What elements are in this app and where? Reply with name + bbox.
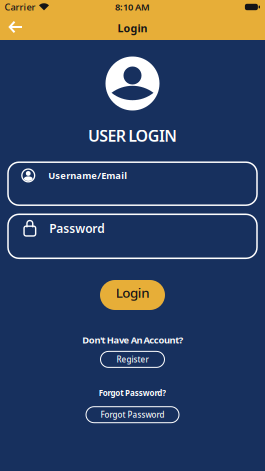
staticText: Register (116, 354, 148, 365)
staticText: 8:10 AM (115, 1, 150, 13)
button[interactable]: Register (100, 351, 164, 367)
button[interactable]: Forgot Password (86, 407, 179, 423)
staticText: USER LOGIN (88, 125, 177, 146)
staticText: Login (117, 21, 147, 35)
button[interactable]: Back (0, 14, 30, 40)
staticText: Don't Have An Account? (82, 334, 183, 346)
button[interactable]: Password (7, 214, 258, 259)
staticText: Forgot Password (100, 409, 164, 420)
staticText: Forgot Password? (99, 387, 166, 398)
staticText: Password (49, 220, 105, 236)
button[interactable]: Login (100, 280, 165, 310)
button[interactable]: Username/Email (7, 161, 258, 206)
staticText: Carrier (4, 1, 35, 13)
staticText: Username/Email (48, 169, 127, 182)
staticText: Login (116, 284, 149, 301)
